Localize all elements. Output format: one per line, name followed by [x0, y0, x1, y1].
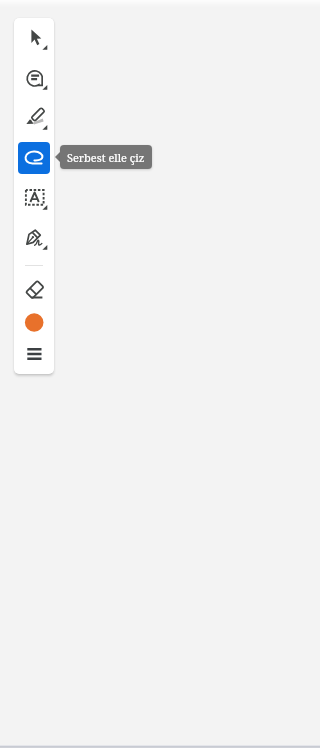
button[interactable]: Eraser	[14, 274, 54, 306]
button[interactable]: Draw freehand	[14, 138, 54, 178]
staticText: Serbest elle çiz	[67, 150, 145, 165]
button[interactable]: Select	[14, 18, 54, 58]
button[interactable]: Colour	[14, 306, 54, 338]
button[interactable]: Menu	[14, 338, 54, 370]
button[interactable]: Text box	[14, 178, 54, 218]
button[interactable]: Signature	[14, 218, 54, 258]
button[interactable]: Comment	[14, 58, 54, 98]
button[interactable]: Highlight	[14, 98, 54, 138]
